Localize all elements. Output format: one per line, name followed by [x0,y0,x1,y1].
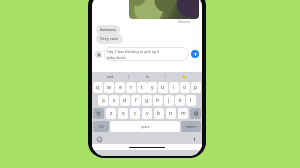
staticText: j [168,97,170,104]
button[interactable]: Dictation [191,136,198,143]
button[interactable]: c [130,108,140,119]
staticText: o [183,84,187,91]
button[interactable]: 🐤 [166,72,202,81]
staticText: l [190,97,192,104]
button[interactable]: b [154,108,164,119]
staticText: e [119,84,122,91]
button[interactable]: u [158,82,168,93]
button[interactable]: m [178,108,188,119]
staticText: c [134,110,137,117]
button[interactable]: Awwww [96,25,120,35]
button[interactable]: o [180,82,190,93]
staticText: r [130,84,133,91]
button[interactable]: z [106,108,116,119]
staticText: q [96,84,100,91]
button[interactable]: g [142,95,152,106]
button[interactable]: i [169,82,179,93]
button[interactable]: j [164,95,174,106]
button[interactable]: Apps [95,51,102,58]
button[interactable]: v [142,108,152,119]
staticText: m [181,110,186,117]
staticText: return [186,125,196,129]
button[interactable]: in [129,72,165,81]
button[interactable]: a [98,95,108,106]
staticText: b [157,110,161,117]
staticText: baby ducks [107,55,126,60]
button[interactable]: n [166,108,176,119]
staticText: y [151,84,154,91]
button[interactable]: k [175,95,185,106]
staticText: i [173,84,175,91]
staticText: p [194,84,198,91]
staticText: space [141,125,150,129]
staticText: n [169,110,173,117]
button[interactable]: l [186,95,196,106]
staticText: and [107,75,113,79]
staticText: x [122,110,125,117]
button[interactable]: d [120,95,130,106]
button[interactable]: w [104,82,114,93]
staticText: s [113,97,116,104]
button[interactable]: y [147,82,157,93]
button[interactable]: r [126,82,136,93]
staticText: h [156,97,160,104]
staticText: u [161,84,165,91]
button[interactable]: Shift [93,108,104,119]
button[interactable]: space [110,121,180,132]
staticText: d [123,97,127,104]
button[interactable]: Send [191,50,199,58]
button[interactable]: t [137,82,147,93]
button[interactable]: s [109,95,119,106]
button[interactable]: e [115,82,125,93]
button[interactable]: Emoji [96,136,103,143]
button[interactable]: and [92,72,128,81]
button[interactable]: Backspace [190,108,201,119]
button[interactable]: p [191,82,201,93]
staticText: Hey, I was thinking to pick up 6 [107,49,160,54]
button[interactable]: 123 [93,121,109,132]
staticText: in [146,75,149,79]
staticText: 123 [98,125,104,129]
staticText: k [179,97,182,104]
button[interactable]: x [118,108,128,119]
staticText: z [110,110,113,117]
staticText: f [135,97,137,104]
button[interactable]: Very cute [96,34,123,44]
button[interactable]: Hey, I was thinking to pick up 6 [104,47,189,61]
button[interactable]: f [131,95,141,106]
staticText: Awwww [100,27,116,33]
staticText: Very cute [100,36,119,42]
button[interactable]: q [93,82,103,93]
staticText: 🐤 [182,75,186,79]
button[interactable]: return [181,121,201,132]
staticText: v [146,110,149,117]
staticText: g [145,97,149,104]
staticText: w [107,84,111,91]
button[interactable]: h [153,95,163,106]
staticText: t [141,84,143,91]
staticText: a [102,97,105,104]
staticText: Delivered [178,20,190,24]
